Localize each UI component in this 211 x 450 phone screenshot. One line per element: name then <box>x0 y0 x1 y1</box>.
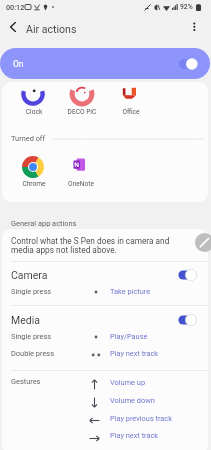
staticText: 92% <box>180 3 193 11</box>
staticText: OneNote <box>51 180 111 188</box>
staticText: Media <box>11 314 40 326</box>
staticText: Turned off <box>11 134 46 143</box>
button[interactable] <box>107 81 153 114</box>
staticText: Chrome <box>4 180 64 188</box>
button[interactable] <box>10 81 56 114</box>
button[interactable] <box>2 306 208 368</box>
button[interactable] <box>11 410 208 428</box>
staticText: Clock <box>4 108 64 116</box>
button[interactable]: More options <box>184 17 205 38</box>
button[interactable] <box>2 262 208 305</box>
staticText: Play next track <box>110 349 159 358</box>
staticText: Play previous track <box>110 414 172 423</box>
staticText: Double press <box>11 349 54 358</box>
staticText: Play next track <box>110 431 159 440</box>
button[interactable] <box>11 427 208 445</box>
staticText: Single press <box>11 332 52 341</box>
staticText: Play/Pause <box>110 332 148 341</box>
staticText: Air actions <box>26 23 77 35</box>
staticText: On <box>13 59 24 69</box>
button[interactable] <box>10 154 56 187</box>
button[interactable]: Navigate up <box>4 17 25 38</box>
staticText: Take picture <box>110 287 151 296</box>
staticText: Volume down <box>110 396 155 405</box>
button[interactable] <box>2 229 208 260</box>
button[interactable] <box>59 81 105 114</box>
staticText: Volume up <box>110 378 146 387</box>
staticText: DECO PIC <box>52 108 112 116</box>
staticText: Camera <box>11 269 48 281</box>
staticText: Gestures <box>11 377 41 386</box>
staticText: Control what the S Pen does in camera an… <box>11 236 194 255</box>
staticText: 00:12 <box>6 3 25 11</box>
button[interactable] <box>11 392 208 410</box>
button[interactable]: Edit <box>195 233 211 252</box>
button[interactable] <box>59 154 105 187</box>
button[interactable] <box>0 48 210 79</box>
staticText: Office <box>101 108 161 116</box>
button[interactable] <box>11 373 208 391</box>
staticText: Single press <box>11 287 52 296</box>
staticText: General app actions <box>11 219 77 228</box>
